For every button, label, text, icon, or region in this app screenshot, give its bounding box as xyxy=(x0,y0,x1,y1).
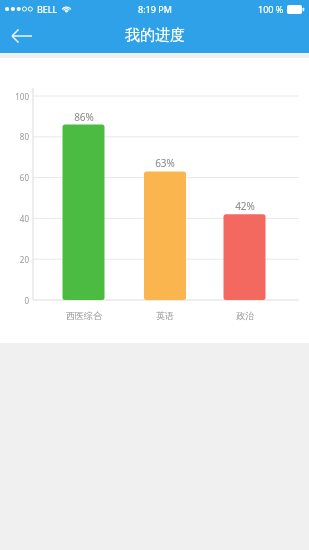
staticText: 80 xyxy=(0,131,29,142)
staticText: 8:19 PM xyxy=(138,3,172,15)
button[interactable]: 西医综合 xyxy=(49,310,119,321)
staticText: 63% xyxy=(140,156,190,170)
staticText: BELL xyxy=(37,3,58,15)
staticText: 100 % xyxy=(258,3,284,15)
staticText: 60 xyxy=(0,172,29,183)
button[interactable]: 政治 xyxy=(210,310,280,321)
staticText: 0 xyxy=(0,295,29,306)
staticText: 100 xyxy=(0,91,29,102)
staticText: 40 xyxy=(0,213,29,224)
button[interactable]: 英语 xyxy=(130,310,200,321)
staticText: 86% xyxy=(59,110,109,124)
staticText: 42% xyxy=(220,199,270,213)
staticText: 我的进度 xyxy=(125,26,185,45)
staticText: 20 xyxy=(0,254,29,265)
button[interactable]: Back xyxy=(0,18,44,53)
